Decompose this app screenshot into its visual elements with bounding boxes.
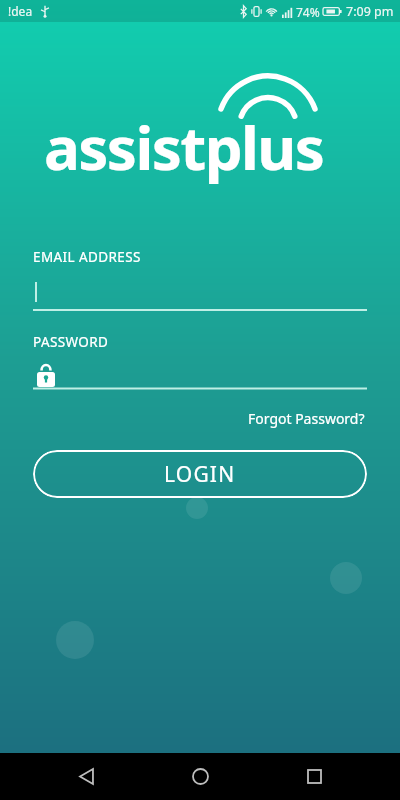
staticText: 74%: [296, 4, 320, 20]
staticText: !dea: [8, 3, 33, 19]
staticText: 7:09 pm: [346, 3, 394, 20]
staticText: PASSWORD: [33, 333, 109, 351]
button[interactable]: [33, 278, 367, 312]
button[interactable]: Back: [58, 753, 114, 800]
button[interactable]: Recent apps: [286, 753, 342, 800]
staticText: EMAIL ADDRESS: [33, 248, 141, 266]
staticText: LOGIN: [164, 460, 236, 489]
staticText: Forgot Password?: [248, 409, 365, 428]
button[interactable]: Forgot Password?: [246, 406, 367, 431]
staticText: assistplus: [44, 106, 324, 188]
button[interactable]: [33, 359, 367, 390]
button[interactable]: Home: [172, 753, 228, 800]
button[interactable]: LOGIN: [33, 450, 367, 498]
